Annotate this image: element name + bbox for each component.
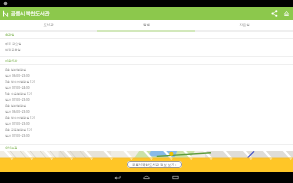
staticText: 공릉시 북한도서관 [11,10,50,17]
button[interactable]: Navigate up [0,7,11,20]
staticText: 3층 청소년열람실 (구) [5,80,35,84]
button[interactable]: 4층 일반열람실 [0,103,293,109]
button[interactable]: 일간 07:00~23:00 [0,97,293,103]
staticText: 도서관 [43,23,54,27]
button[interactable]: 도서관 [0,20,97,30]
staticText: 이용시간 [5,59,18,63]
button[interactable]: 4층 공동열람실 (구) [0,127,293,133]
button[interactable]: 공릉시북한도서관 정보 보기 › [127,161,182,168]
staticText: 일간 07:00~23:00 [5,134,30,138]
staticText: 자료실 [239,23,250,27]
staticText: 공릉시북한도서관 정보 보기 › [132,162,177,167]
staticText: 법정공휴일 [5,48,21,52]
staticText: 일간 07:00~23:00 [5,122,30,126]
button[interactable]: 3층 청소년열람실 (구) [0,79,293,85]
button[interactable]: 일간 07:00~23:00 [0,133,293,139]
button[interactable]: 매주 금요일 [0,39,293,47]
staticText: 4층 일반열람실 [5,104,27,108]
button[interactable]: 일간 06:00~23:00 [0,109,293,115]
button[interactable]: Recent apps [170,172,181,183]
button[interactable]: 일간 06:00~23:00 [0,73,293,79]
staticText: 월별 [143,23,150,27]
button[interactable]: 법정공휴일 [0,47,293,53]
staticText: 4층 공동열람실 (구) [5,128,32,132]
staticText: 5층 소음열람실 (구) [5,92,32,96]
staticText: 오시는길 [5,146,18,150]
button[interactable]: Back [112,172,123,183]
button[interactable]: Home [141,172,152,183]
button[interactable]: 월별 [97,20,195,30]
button[interactable]: 일간 07:00~24:00 [0,85,293,91]
staticText: 일간 06:00~23:00 [5,110,30,114]
staticText: 휴관일 [5,33,15,37]
button[interactable]: Share [268,7,280,20]
staticText: 일간 07:00~23:00 [5,98,30,102]
staticText: 4층 청소년열람실 (구) [5,116,35,120]
staticText: 일간 06:00~23:00 [5,74,30,78]
staticText: 일간 07:00~24:00 [5,86,30,90]
button[interactable]: 자료실 [195,20,293,30]
button[interactable]: 일간 07:00~23:00 [0,121,293,127]
button[interactable]: 4층 일반열람실 [0,65,293,73]
staticText: 4층 일반열람실 [5,68,27,72]
button[interactable]: 5층 소음열람실 (구) [0,91,293,97]
button[interactable]: More options [280,7,292,20]
button[interactable]: 4층 청소년열람실 (구) [0,115,293,121]
staticText: 매주 금요일 [5,42,22,46]
